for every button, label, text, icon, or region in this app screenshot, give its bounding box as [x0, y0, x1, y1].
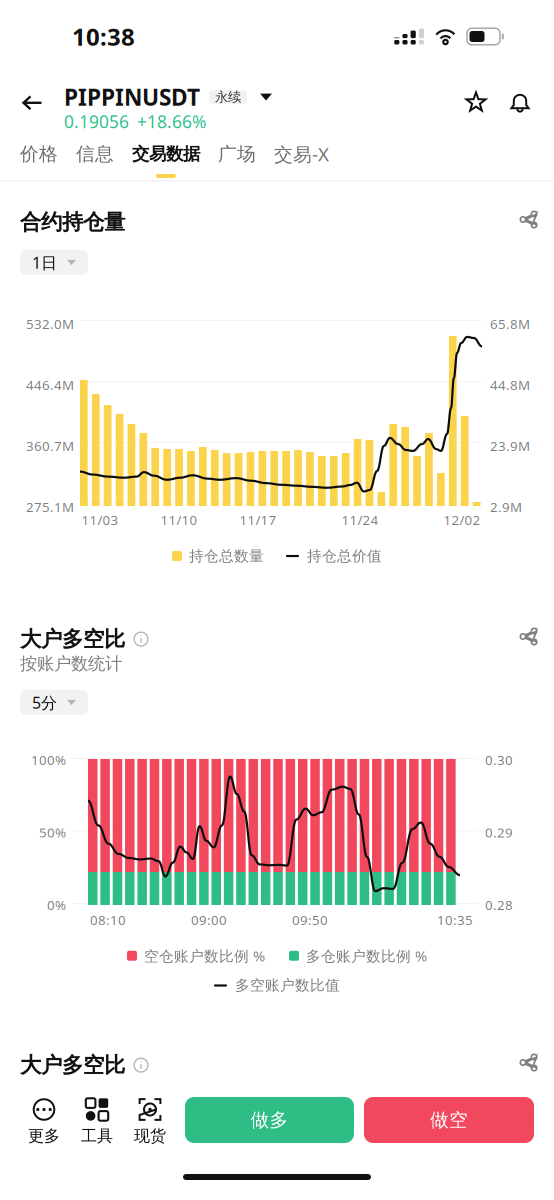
staticText: 做空	[430, 1108, 468, 1131]
button[interactable]: 5分	[20, 690, 88, 715]
button[interactable]: 更多	[21, 1098, 67, 1146]
staticText: 1日	[32, 252, 57, 273]
staticText: 交易数据	[132, 143, 200, 165]
staticText: 大户多空比	[20, 626, 125, 652]
staticText: 11/10	[160, 511, 197, 529]
button[interactable]: 信息	[76, 143, 114, 178]
staticText: 大户多空比	[20, 1052, 125, 1078]
staticText: 11/03	[81, 511, 118, 529]
staticText: 2.9M	[490, 498, 522, 516]
staticText: 0.28	[485, 896, 513, 914]
staticText: 44.8M	[490, 376, 530, 394]
staticText: 50%	[39, 823, 66, 841]
button[interactable]: 交易-X	[274, 143, 329, 178]
staticText: 12/02	[443, 511, 480, 529]
staticText: 446.4M	[26, 376, 74, 394]
staticText: 08:10	[90, 911, 126, 929]
staticText: 65.8M	[490, 315, 530, 333]
staticText: 09:50	[292, 911, 328, 929]
staticText: 持仓总价值	[307, 547, 382, 565]
staticText: 10:38	[72, 21, 135, 52]
button[interactable]: Switch contract	[247, 94, 272, 101]
staticText: 交易-X	[274, 142, 329, 166]
button[interactable]: Alerts	[510, 92, 530, 113]
button[interactable]: Favourite	[466, 92, 486, 113]
button[interactable]: 做空	[364, 1097, 534, 1143]
button[interactable]: 现货	[127, 1098, 173, 1146]
staticText: 多仓账户数比例 %	[306, 946, 427, 965]
staticText: 更多	[28, 1126, 60, 1146]
staticText: 100%	[31, 751, 66, 769]
staticText: 广场	[218, 142, 256, 165]
button[interactable]: 1日	[20, 250, 88, 275]
staticText: 信息	[76, 142, 114, 165]
staticText: 0.29	[485, 823, 513, 841]
button[interactable]: 价格	[20, 143, 58, 178]
staticText: 合约持仓量	[20, 209, 125, 235]
staticText: 10:35	[437, 911, 473, 929]
staticText: 按账户数统计	[20, 653, 122, 674]
staticText: 11/24	[341, 511, 378, 529]
staticText: 0%	[47, 896, 66, 914]
staticText: 0.19056	[64, 110, 129, 133]
staticText: 做多	[250, 1108, 288, 1131]
button[interactable]: Back	[22, 95, 43, 111]
button[interactable]: 广场	[218, 143, 256, 178]
staticText: 09:00	[191, 911, 227, 929]
button[interactable]: 做多	[185, 1097, 354, 1143]
button[interactable]: 工具	[74, 1098, 120, 1146]
button[interactable]: Share	[520, 628, 537, 645]
staticText: 空仓账户数比例 %	[144, 946, 265, 965]
button[interactable]: Share	[520, 1054, 537, 1071]
staticText: 价格	[20, 142, 58, 165]
staticText: PIPPINUSDT	[64, 82, 200, 112]
staticText: 11/17	[239, 511, 276, 529]
staticText: 275.1M	[26, 498, 74, 516]
staticText: 0.30	[485, 751, 513, 769]
staticText: 多空账户数比值	[235, 976, 340, 994]
staticText: 现货	[134, 1126, 166, 1146]
staticText: 532.0M	[26, 315, 74, 333]
button[interactable]: Share	[520, 211, 537, 228]
staticText: 持仓总数量	[189, 547, 264, 565]
staticText: 永续	[215, 89, 241, 105]
staticText: 360.7M	[26, 437, 74, 455]
staticText: 工具	[81, 1126, 113, 1146]
button[interactable]: 交易数据	[132, 143, 200, 178]
staticText: 23.9M	[490, 437, 530, 455]
staticText: 5分	[32, 692, 57, 713]
staticText: +18.66%	[137, 110, 206, 133]
